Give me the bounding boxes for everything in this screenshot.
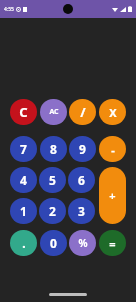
button[interactable]: 3 bbox=[68, 198, 95, 224]
button[interactable]: - bbox=[99, 136, 126, 162]
button[interactable]: 2 bbox=[39, 198, 66, 224]
button[interactable]: 8 bbox=[40, 136, 67, 162]
staticText: 7 bbox=[20, 141, 27, 157]
staticText: 6 bbox=[78, 172, 85, 188]
staticText: 2 bbox=[49, 203, 56, 219]
staticText: / bbox=[80, 103, 86, 121]
button[interactable]: 5 bbox=[39, 167, 66, 193]
staticText: + bbox=[109, 188, 116, 203]
button[interactable]: 7 bbox=[10, 136, 37, 162]
staticText: 4:55 bbox=[4, 6, 14, 13]
button[interactable]: 9 bbox=[69, 136, 96, 162]
staticText: = bbox=[109, 236, 116, 251]
button[interactable]: / bbox=[69, 99, 96, 125]
staticText: % bbox=[78, 236, 88, 250]
button[interactable]: 6 bbox=[68, 167, 95, 193]
button[interactable]: . bbox=[10, 230, 37, 256]
staticText: . bbox=[22, 235, 26, 251]
button[interactable]: C bbox=[10, 99, 37, 125]
button[interactable]: 0 bbox=[40, 230, 67, 256]
staticText: 0 bbox=[50, 235, 57, 251]
staticText: 8 bbox=[50, 141, 57, 157]
staticText: AC bbox=[49, 107, 59, 117]
staticText: - bbox=[111, 142, 115, 157]
staticText: C bbox=[19, 103, 28, 121]
staticText: 4 bbox=[20, 172, 27, 188]
staticText: 1 bbox=[20, 203, 27, 219]
button[interactable]: 1 bbox=[10, 198, 37, 224]
button[interactable]: = bbox=[99, 230, 126, 256]
staticText: 9 bbox=[79, 141, 86, 157]
button[interactable]: X bbox=[99, 99, 126, 125]
staticText: 5 bbox=[49, 172, 56, 188]
staticText: X bbox=[109, 105, 117, 120]
button[interactable]: AC bbox=[40, 99, 67, 125]
button[interactable]: + bbox=[99, 167, 126, 224]
button[interactable]: 4 bbox=[10, 167, 37, 193]
button[interactable]: % bbox=[69, 230, 96, 256]
staticText: 3 bbox=[78, 203, 85, 219]
